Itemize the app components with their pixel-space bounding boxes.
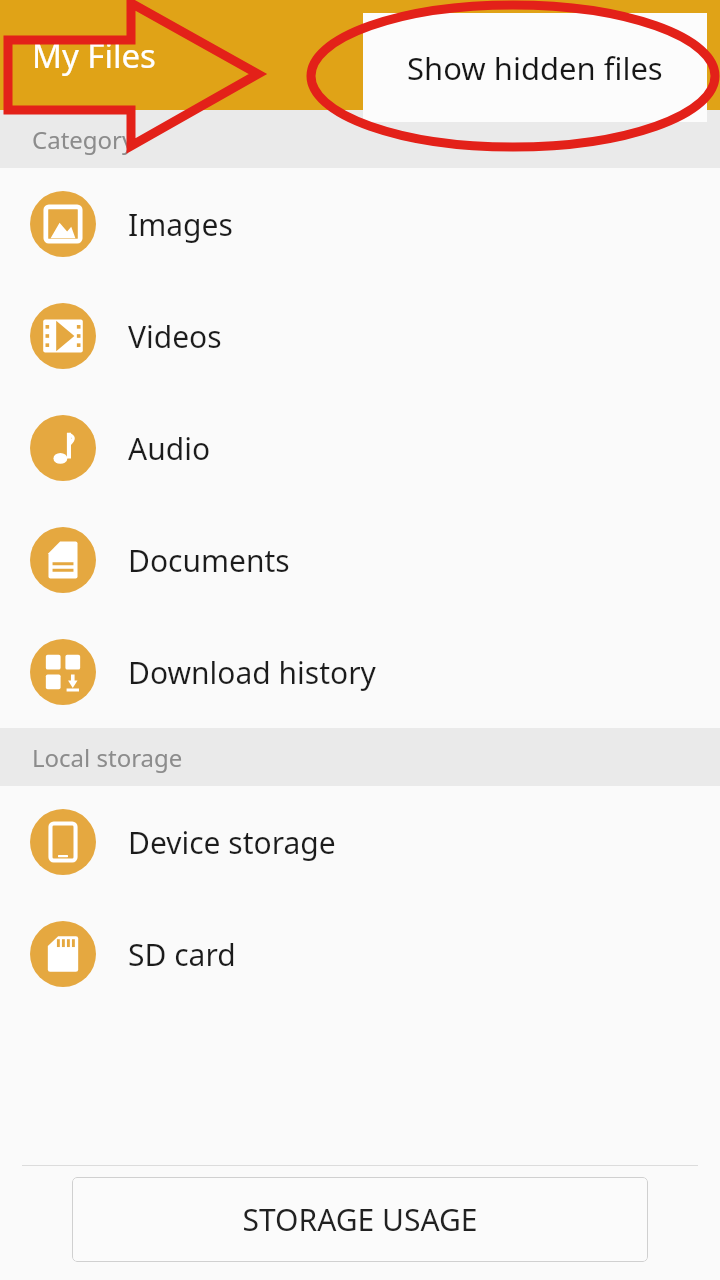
button[interactable]: Download history (0, 616, 720, 728)
staticText: Device storage (128, 822, 336, 863)
staticText: Images (128, 204, 233, 245)
button[interactable]: STORAGE USAGE (72, 1177, 648, 1262)
staticText: SD card (128, 934, 236, 975)
button[interactable]: SD card (0, 898, 720, 1010)
button[interactable]: Videos (0, 280, 720, 392)
button[interactable]: Images (0, 168, 720, 280)
staticText: Show hidden files (407, 47, 663, 89)
staticText: Category (32, 123, 135, 156)
button[interactable]: Audio (0, 392, 720, 504)
staticText: STORAGE USAGE (242, 1199, 478, 1240)
staticText: Local storage (32, 741, 183, 774)
staticText: Videos (128, 316, 222, 357)
staticText: Download history (128, 652, 376, 693)
staticText: My Files (32, 33, 156, 78)
button[interactable]: Documents (0, 504, 720, 616)
staticText: Audio (128, 428, 211, 469)
button[interactable]: Device storage (0, 786, 720, 898)
button[interactable]: Show hidden files (363, 13, 707, 122)
staticText: Documents (128, 540, 290, 581)
